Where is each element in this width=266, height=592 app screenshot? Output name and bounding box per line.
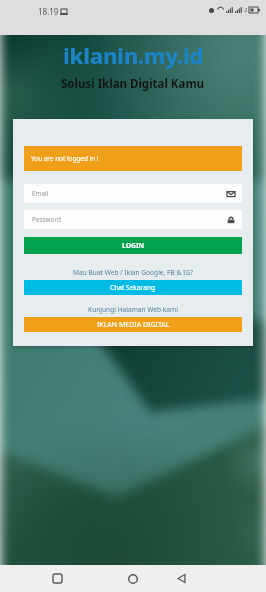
button[interactable]: IKLAN MEDIA DIGITAL: [24, 317, 242, 332]
button[interactable]: Email: [24, 184, 242, 203]
staticText: You are not logged in !: [31, 154, 99, 163]
button[interactable]: Back: [167, 565, 195, 592]
button[interactable]: Chat Sekarang: [24, 280, 242, 295]
button[interactable]: Home: [119, 565, 147, 592]
staticText: 2: [244, 6, 248, 14]
staticText: IKLAN MEDIA DIGITAL: [97, 320, 170, 330]
staticText: LOGIN: [122, 241, 145, 250]
button[interactable]: Recent apps: [43, 565, 71, 592]
button[interactable]: Password: [24, 210, 242, 229]
staticText: Chat Sekarang: [110, 283, 156, 292]
staticText: 18.19: [38, 6, 59, 17]
staticText: Email: [32, 189, 49, 198]
staticText: Mau Buat Web / Iklan Google, FB & IG?: [24, 268, 242, 277]
button[interactable]: You are not logged in !: [24, 146, 242, 171]
staticText: Kunjungi Halaman Web kami: [24, 305, 242, 314]
staticText: Solusi Iklan Digital Kamu: [61, 76, 205, 92]
staticText: iklanin.my.id: [63, 40, 204, 70]
staticText: Password: [32, 215, 61, 224]
button[interactable]: LOGIN: [24, 237, 242, 254]
